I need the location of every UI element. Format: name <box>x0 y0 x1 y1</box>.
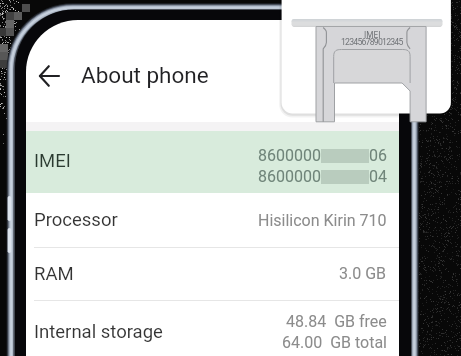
staticText: Processor <box>34 209 118 231</box>
button[interactable]: Internal storage <box>26 300 399 356</box>
staticText: IMEI <box>364 30 381 40</box>
button[interactable]: RAM <box>26 247 399 300</box>
staticText: 06 <box>369 146 387 165</box>
staticText: Hisilicon Kirin 710 <box>258 211 387 230</box>
staticText: 3.0 GB <box>339 264 387 283</box>
button[interactable]: Navigate up <box>29 56 69 96</box>
button[interactable]: IMEI <box>26 131 399 193</box>
button[interactable]: Processor <box>26 193 399 247</box>
staticText: 48.84 GB free <box>286 312 387 331</box>
staticText: 04 <box>369 167 387 186</box>
staticText: IMEI <box>34 150 71 172</box>
staticText: 64.00 GB total <box>282 333 387 352</box>
staticText: Internal storage <box>34 321 163 343</box>
staticText: 123456789012345 <box>341 37 403 47</box>
staticText: About phone <box>81 62 209 88</box>
staticText: 8600000 <box>258 167 321 186</box>
staticText: RAM <box>34 263 74 285</box>
staticText: 8600000 <box>258 146 321 165</box>
